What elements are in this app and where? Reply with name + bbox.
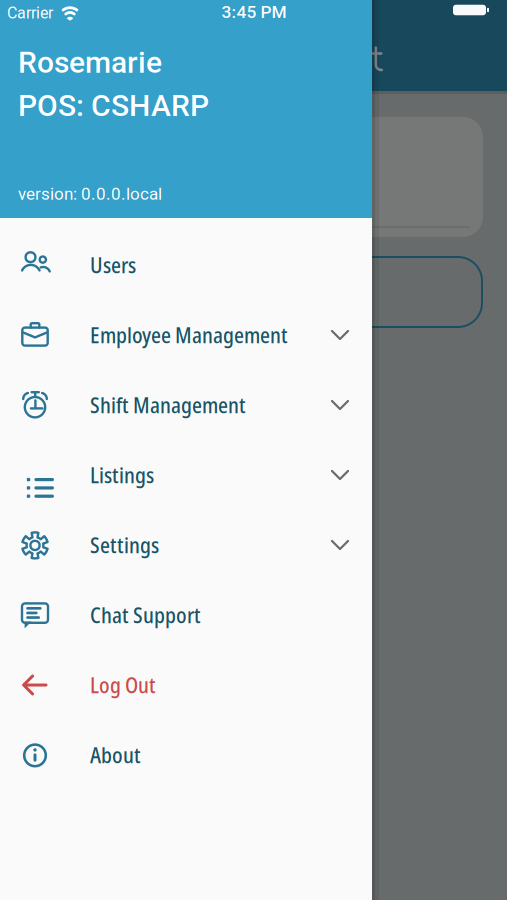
button[interactable]: Listings xyxy=(0,440,372,510)
button[interactable]: Chat Support xyxy=(0,580,372,650)
staticText: Listings xyxy=(90,461,154,489)
staticText: Carrier xyxy=(7,4,53,22)
staticText: Users xyxy=(90,251,136,279)
staticText: Shift Management xyxy=(90,391,246,419)
staticText: Settings xyxy=(90,531,159,559)
button[interactable]: Settings xyxy=(0,510,372,580)
staticText: Employee Management xyxy=(90,321,288,349)
staticText: About xyxy=(90,741,141,769)
button[interactable]: Employee Management xyxy=(0,300,372,370)
button[interactable]: About xyxy=(0,720,372,790)
button[interactable]: Users xyxy=(0,230,372,300)
staticText: 3:45 PM xyxy=(221,2,286,22)
staticText: Chat Support xyxy=(90,601,201,629)
staticText: version: 0.0.0.local xyxy=(18,184,162,204)
staticText: Rosemarie xyxy=(18,45,162,80)
button[interactable]: Log Out xyxy=(0,650,372,720)
staticText: Log Out xyxy=(90,671,156,699)
staticText: POS: CSHARP xyxy=(18,88,209,123)
button[interactable]: Shift Management xyxy=(0,370,372,440)
